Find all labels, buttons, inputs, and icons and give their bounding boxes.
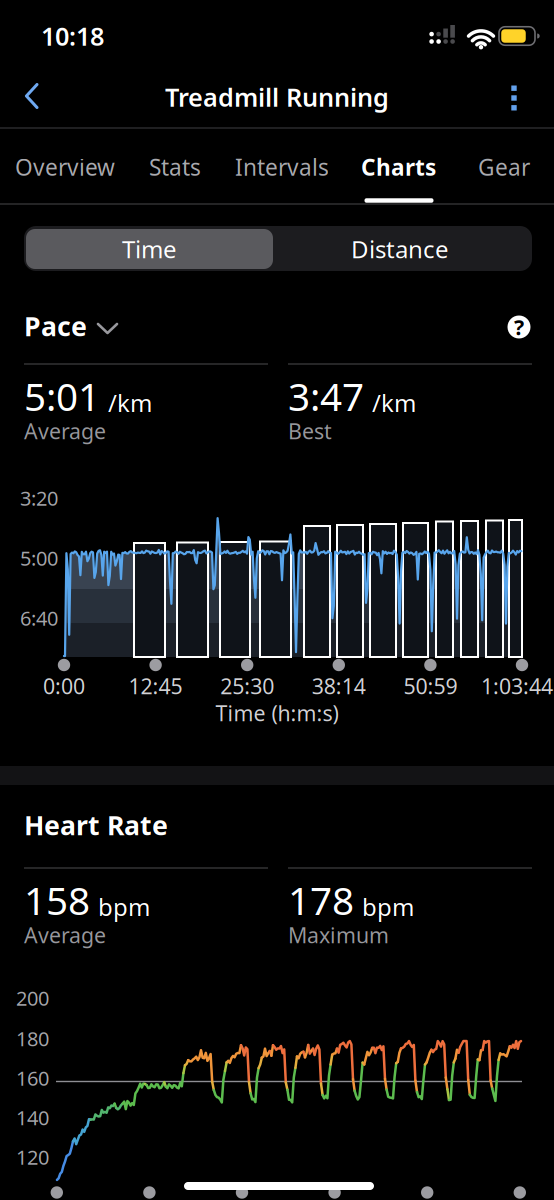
staticText: 12:45 xyxy=(129,672,183,700)
staticText: Pace xyxy=(24,308,87,344)
staticText: Time (h:m:s) xyxy=(215,699,338,727)
button[interactable]: Stats xyxy=(149,145,201,189)
staticText: Average xyxy=(24,921,106,949)
staticText: 3:47 xyxy=(288,370,364,422)
staticText: 200 xyxy=(16,985,49,1011)
staticText: 38:14 xyxy=(312,672,366,700)
staticText: bpm xyxy=(98,891,150,923)
staticText: bpm xyxy=(362,891,414,923)
button[interactable]: Pace xyxy=(24,304,264,348)
button[interactable]: Intervals xyxy=(235,145,329,189)
staticText: Overview xyxy=(15,152,115,182)
staticText: 6:40 xyxy=(20,605,58,631)
staticText: 10:18 xyxy=(41,19,104,53)
button[interactable]: Gear xyxy=(478,145,530,189)
staticText: Stats xyxy=(149,152,201,182)
button[interactable]: Time xyxy=(26,229,273,269)
staticText: /km xyxy=(108,387,152,419)
staticText: Heart Rate xyxy=(24,807,168,843)
staticText: 5:00 xyxy=(20,545,58,571)
button[interactable]: Distance xyxy=(276,229,523,269)
staticText: 120 xyxy=(16,1144,49,1170)
staticText: Intervals xyxy=(235,152,329,182)
staticText: 178 xyxy=(288,874,354,926)
staticText: Distance xyxy=(351,233,449,265)
staticText: Charts xyxy=(361,152,436,182)
staticText: Gear xyxy=(478,152,530,182)
staticText: Time xyxy=(122,233,177,265)
staticText: 1:03:44 xyxy=(481,672,553,700)
staticText: Treadmill Running xyxy=(165,80,389,114)
button[interactable]: Help xyxy=(507,313,530,341)
staticText: 25:30 xyxy=(220,672,274,700)
staticText: 50:59 xyxy=(403,672,457,700)
staticText: 5:01 xyxy=(24,370,100,422)
staticText: 158 xyxy=(24,874,90,926)
staticText: 160 xyxy=(16,1065,49,1091)
staticText: 180 xyxy=(16,1025,49,1052)
staticText: Average xyxy=(24,417,106,445)
button[interactable]: Charts xyxy=(361,145,436,189)
staticText: Maximum xyxy=(288,921,389,949)
staticText: 0:00 xyxy=(43,672,85,700)
staticText: /km xyxy=(372,387,416,419)
button[interactable]: More options xyxy=(492,76,536,120)
staticText: 3:20 xyxy=(20,485,58,511)
staticText: ? xyxy=(514,313,524,341)
button[interactable]: Back xyxy=(10,74,54,118)
staticText: Best xyxy=(288,417,332,445)
staticText: 140 xyxy=(16,1104,49,1131)
button[interactable]: Overview xyxy=(15,145,115,189)
